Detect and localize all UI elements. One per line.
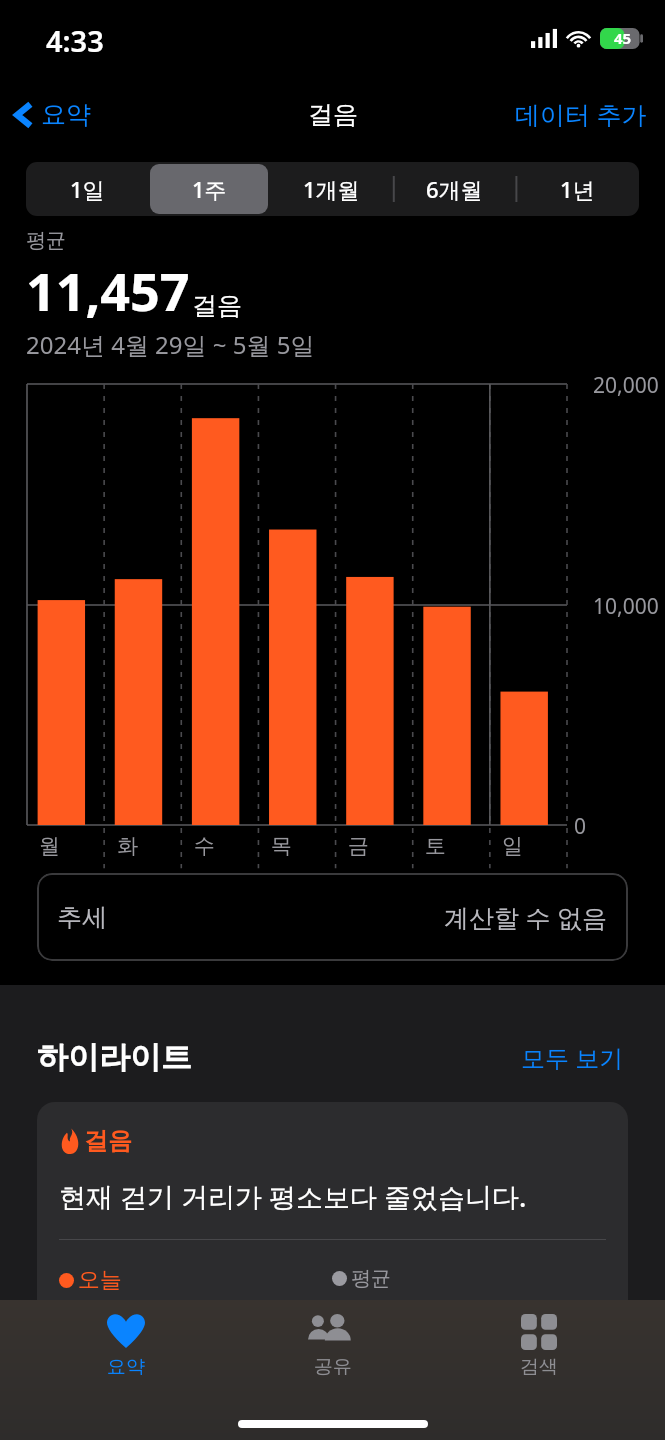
staticText: 요약	[107, 1355, 145, 1379]
staticText: 걸음	[308, 99, 358, 130]
button[interactable]: 데이터 추가	[497, 89, 665, 139]
staticText: 10,000	[593, 592, 659, 621]
button[interactable]: 6개월	[395, 164, 514, 214]
staticText: 현재 걷기 거리가 평소보다 줄었습니다.	[59, 1178, 527, 1215]
staticText: 금	[348, 833, 369, 859]
staticText: 데이터 추가	[515, 97, 647, 131]
staticText: 20,000	[593, 371, 659, 400]
button[interactable]: 1일	[28, 164, 146, 214]
staticText: 2024년 4월 29일 ~ 5월 5일	[26, 328, 315, 361]
staticText: 0	[574, 812, 587, 841]
button[interactable]: 공유	[253, 1308, 413, 1385]
staticText: 요약	[41, 99, 91, 130]
button[interactable]: 1년	[518, 164, 637, 214]
button[interactable]: 검색	[459, 1308, 619, 1385]
staticText: 걸음	[192, 290, 242, 321]
button[interactable]: 요약	[0, 93, 101, 136]
staticText: 오늘	[78, 1266, 122, 1294]
staticText: 걸음	[84, 1126, 132, 1156]
staticText: 수	[194, 833, 215, 859]
staticText: 45	[614, 28, 632, 48]
staticText: 목	[271, 833, 292, 859]
staticText: 화	[117, 833, 138, 859]
button[interactable]: 추세	[37, 873, 628, 961]
staticText: 1일	[70, 174, 105, 204]
staticText: 하이라이트	[37, 1038, 192, 1077]
staticText: 1주	[192, 174, 227, 204]
staticText: 1년	[560, 174, 595, 204]
staticText: 계산할 수 없음	[444, 900, 608, 934]
staticText: 추세	[57, 902, 107, 933]
button[interactable]: 걸음	[37, 1102, 628, 1342]
staticText: 모두 보기	[521, 1041, 624, 1074]
staticText: 일	[502, 833, 523, 859]
staticText: 평균	[351, 1266, 391, 1291]
staticText: 1개월	[303, 174, 360, 204]
button[interactable]: 1개월	[272, 164, 391, 214]
button[interactable]: 1주	[150, 164, 268, 214]
staticText: 월	[39, 833, 60, 859]
staticText: 평균	[26, 228, 66, 253]
button[interactable]: 모두 보기	[517, 1035, 628, 1080]
staticText: 11,457	[26, 255, 190, 326]
staticText: 6개월	[426, 174, 483, 204]
staticText: 토	[425, 833, 446, 859]
staticText: 4:33	[46, 21, 104, 60]
staticText: 공유	[314, 1355, 352, 1379]
button[interactable]: 요약	[46, 1308, 206, 1385]
staticText: 검색	[520, 1355, 558, 1379]
